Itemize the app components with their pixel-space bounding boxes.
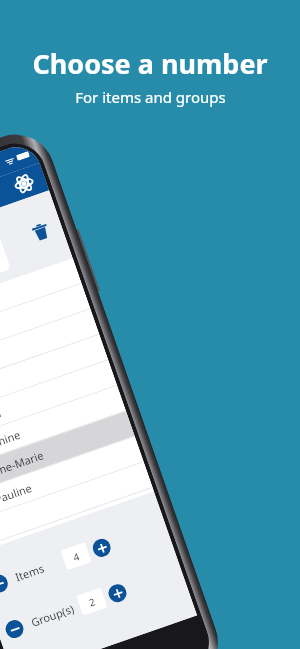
staticText: Pauline — [0, 480, 34, 507]
button[interactable]: Pauline — [0, 437, 144, 525]
staticText: Anne-Marie — [0, 447, 46, 481]
button[interactable]: Claire — [0, 309, 99, 398]
button[interactable]: Jeannine — [0, 386, 126, 474]
button[interactable]: Delete — [30, 221, 52, 243]
staticText: Jeannine — [0, 427, 22, 456]
button[interactable]: Robert — [0, 284, 90, 372]
button[interactable]: Decrease — [3, 618, 26, 640]
button[interactable]: Nicole — [0, 335, 108, 423]
button[interactable]: 2 — [76, 587, 108, 616]
button[interactable]: Increase — [90, 536, 113, 559]
staticText: For items and groups — [75, 87, 226, 107]
staticText: Items — [13, 560, 46, 584]
staticText: Michel — [0, 405, 3, 430]
button[interactable]: 4 — [60, 542, 92, 570]
staticText: 2 — [87, 594, 97, 610]
button[interactable] — [0, 220, 11, 309]
button[interactable]: Settings — [12, 171, 36, 196]
button[interactable]: Michel — [0, 360, 117, 449]
other: Volume button — [74, 229, 100, 293]
staticText: Group(s) — [29, 601, 76, 630]
staticText: 4 — [71, 549, 81, 564]
button[interactable]: Sylvie — [0, 258, 82, 347]
button[interactable]: Decrease — [0, 572, 10, 595]
button[interactable]: Anne-Marie — [0, 411, 135, 500]
staticText: Choose a number — [32, 45, 268, 82]
button[interactable] — [0, 462, 152, 551]
button[interactable]: Increase — [106, 582, 129, 605]
